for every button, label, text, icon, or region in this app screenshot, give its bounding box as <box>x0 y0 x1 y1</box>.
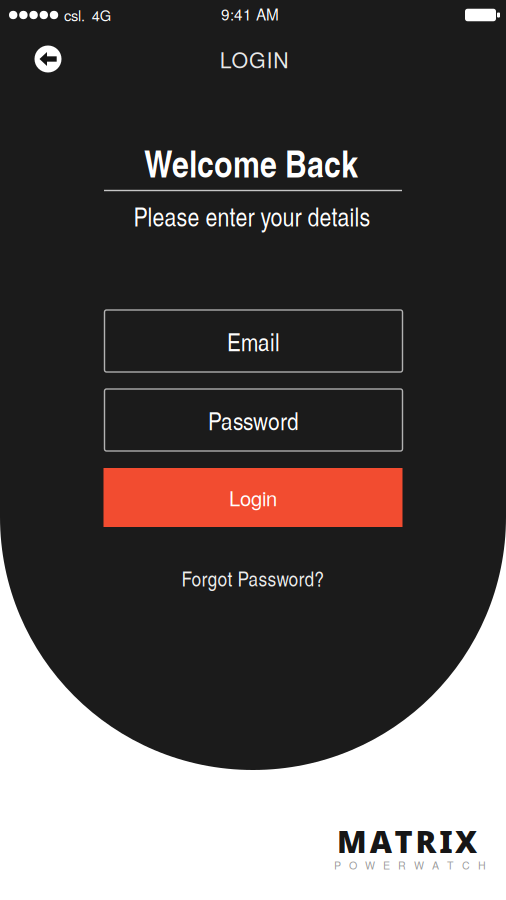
staticText: T <box>395 821 413 861</box>
staticText: W <box>365 857 375 873</box>
staticText: X <box>455 821 477 861</box>
button[interactable]: Login <box>103 468 402 527</box>
staticText: I <box>439 821 452 861</box>
staticText: O <box>349 857 357 873</box>
button[interactable]: Forgot Password? <box>173 556 332 600</box>
staticText: Email <box>227 324 280 358</box>
staticText: T <box>447 857 454 873</box>
staticText: A <box>370 821 392 861</box>
staticText: H <box>478 857 486 873</box>
staticText: C <box>462 857 470 873</box>
staticText: 9:41 AM <box>221 3 279 25</box>
staticText: M <box>337 821 367 861</box>
staticText: Forgot Password? <box>181 564 324 592</box>
staticText: W <box>414 857 424 873</box>
staticText: R <box>398 857 406 873</box>
staticText: 4G <box>92 4 111 25</box>
staticText: R <box>415 821 436 861</box>
staticText: E <box>383 857 390 873</box>
staticText: Welcome Back <box>144 137 358 189</box>
staticText: Login <box>229 483 277 512</box>
button[interactable]: Email <box>104 310 402 372</box>
staticText: Password <box>208 403 299 437</box>
staticText: A <box>432 857 439 873</box>
button[interactable]: Password <box>104 389 402 451</box>
staticText: P <box>334 857 341 873</box>
staticText: Please enter your details <box>133 198 370 234</box>
button[interactable]: Back <box>28 39 68 79</box>
staticText: csl. <box>64 4 85 25</box>
staticText: LOGIN <box>220 44 288 74</box>
